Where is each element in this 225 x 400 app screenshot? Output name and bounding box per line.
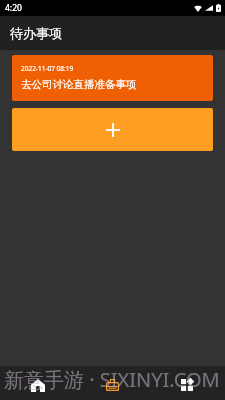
button[interactable]: 2022-11-07 08:19 xyxy=(12,55,213,101)
staticText: 新意手游 · SIXINYI.COM xyxy=(4,366,220,393)
button[interactable]: Home xyxy=(0,366,75,400)
staticText: 4:20 xyxy=(5,2,22,14)
button[interactable]: Add todo xyxy=(12,108,213,151)
staticText: 去公司讨论直播准备事项 xyxy=(21,78,137,91)
button[interactable]: Apps xyxy=(150,366,225,400)
button[interactable]: Toolbox xyxy=(75,366,150,400)
staticText: 待办事项 xyxy=(10,25,62,41)
staticText: 2022-11-07 08:19 xyxy=(21,64,74,73)
